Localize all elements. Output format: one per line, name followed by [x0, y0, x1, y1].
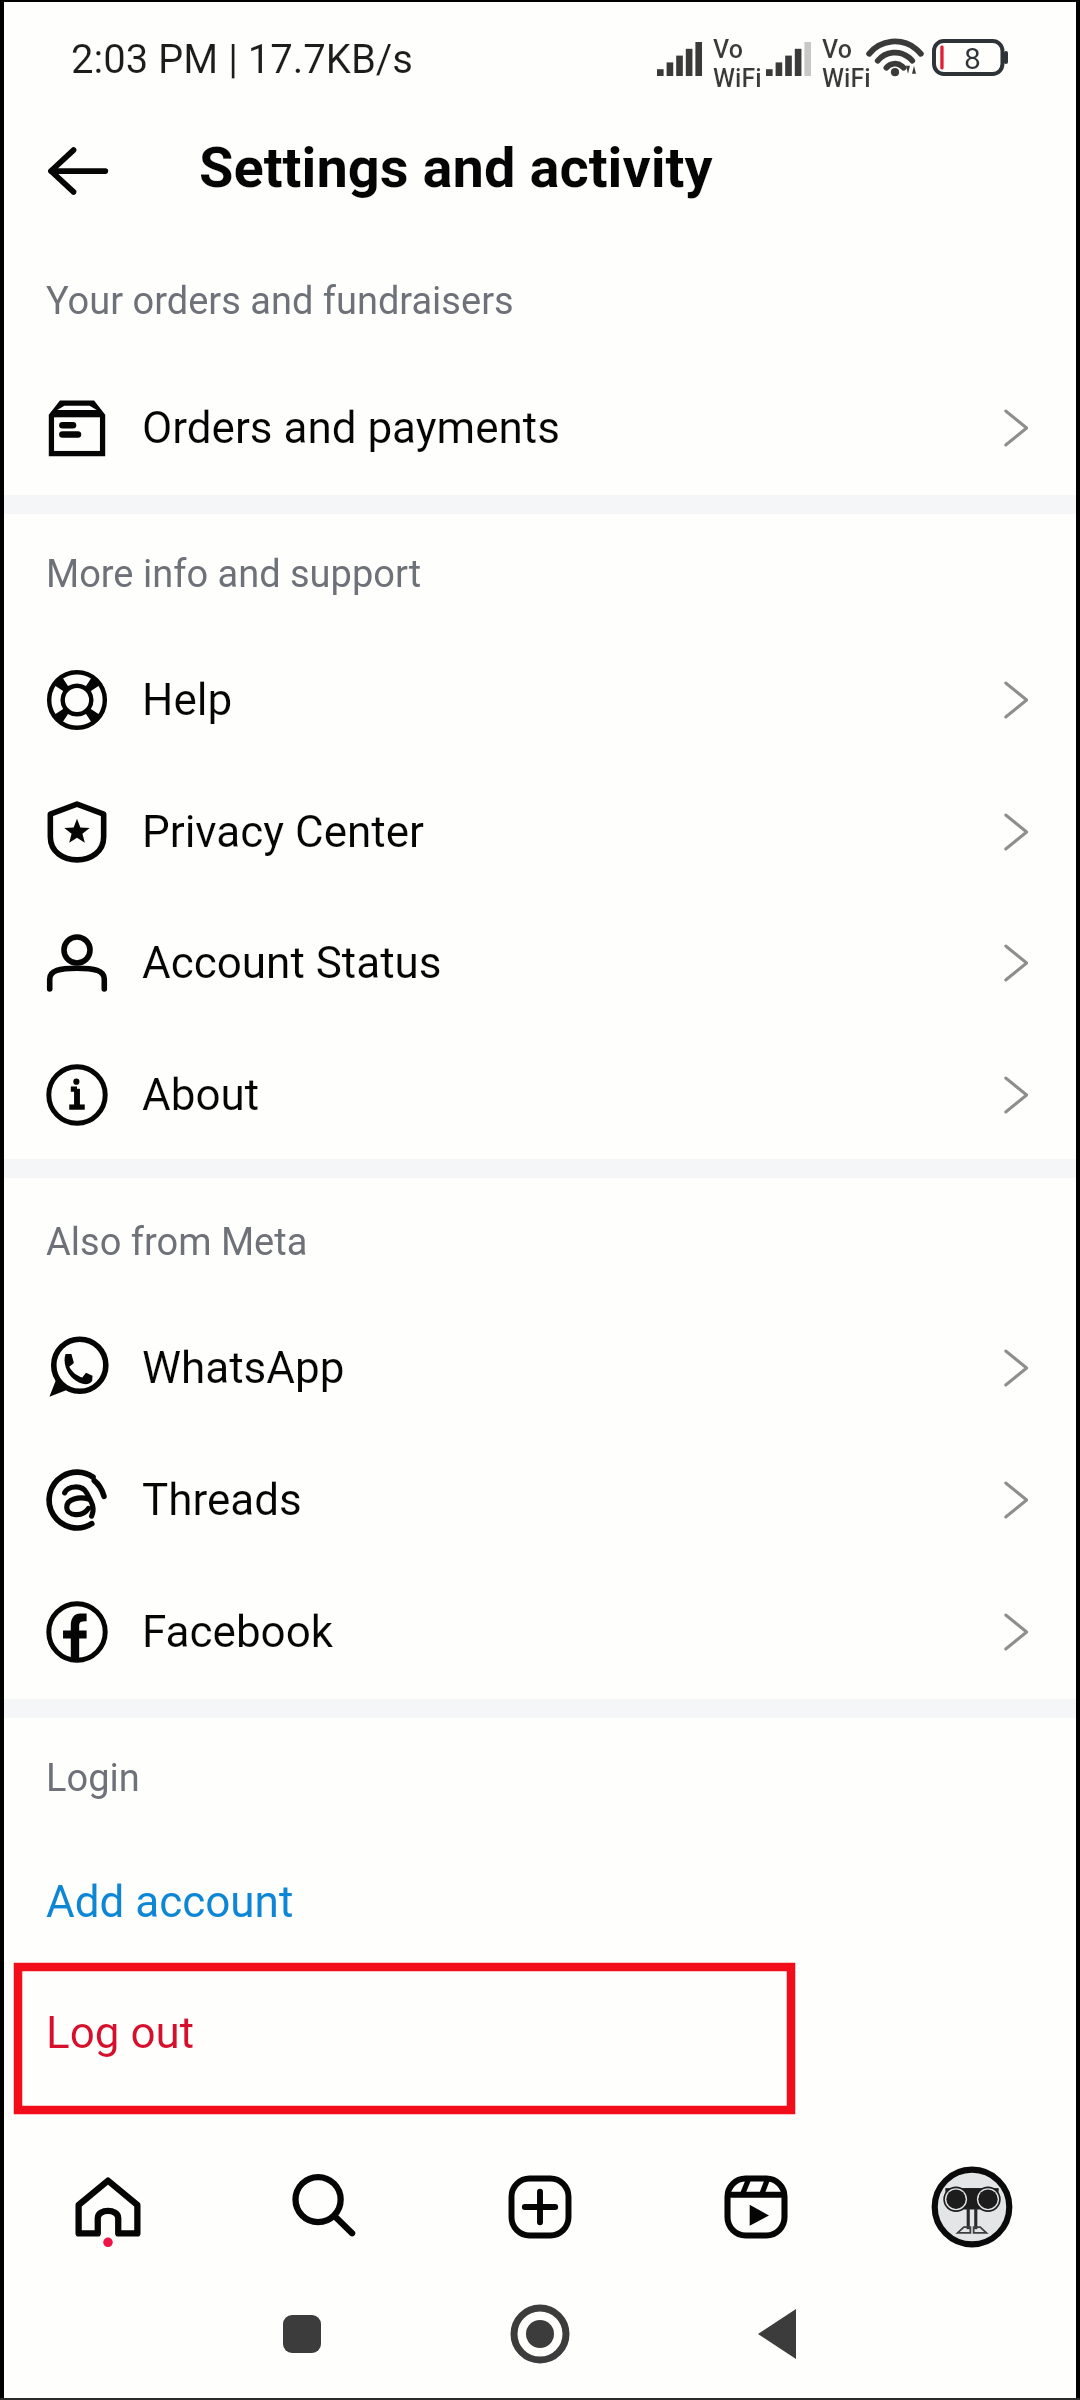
button[interactable]: Facebook	[0, 1566, 1080, 1697]
staticText: WiFi	[822, 64, 871, 93]
button[interactable]: Reels	[648, 2152, 864, 2262]
button[interactable]: Help	[0, 634, 1080, 765]
button[interactable]: Home	[0, 2152, 216, 2262]
staticText: About	[142, 1069, 260, 1121]
button[interactable]: Profile	[864, 2152, 1080, 2262]
staticText: WiFi	[713, 64, 762, 93]
button[interactable]: Log out	[0, 1964, 1080, 2113]
staticText: Add account	[46, 1876, 294, 1928]
staticText: 8	[964, 41, 981, 74]
staticText: Log out	[46, 2007, 195, 2059]
staticText: Login	[46, 1756, 140, 1801]
button[interactable]: WhatsApp	[0, 1302, 1080, 1433]
staticText: Facebook	[142, 1606, 334, 1658]
button[interactable]: Privacy Center	[0, 766, 1080, 897]
staticText: Your orders and fundraisers	[46, 279, 514, 324]
staticText: Help	[142, 674, 233, 726]
button[interactable]: Threads	[0, 1434, 1080, 1565]
staticText: Privacy Center	[142, 806, 424, 858]
button[interactable]: Orders and payments	[0, 362, 1080, 493]
button[interactable]: About	[0, 1029, 1080, 1160]
staticText: Also from Meta	[46, 1220, 308, 1265]
button[interactable]: Add account	[0, 1838, 1080, 1966]
button[interactable]: Back	[35, 128, 121, 214]
staticText: More info and support	[46, 552, 422, 597]
staticText: Vo	[822, 35, 852, 64]
staticText: Vo	[713, 35, 743, 64]
staticText: 2:03 PM | 17.7KB/s	[71, 36, 413, 83]
staticText: WhatsApp	[142, 1342, 345, 1394]
staticText: Orders and payments	[142, 402, 560, 454]
button[interactable]: Create	[432, 2152, 648, 2262]
staticText: Threads	[142, 1474, 302, 1526]
staticText: Account Status	[142, 937, 442, 989]
staticText: Settings and activity	[199, 135, 713, 201]
button[interactable]: Account Status	[0, 897, 1080, 1028]
button[interactable]: Search	[216, 2152, 432, 2262]
